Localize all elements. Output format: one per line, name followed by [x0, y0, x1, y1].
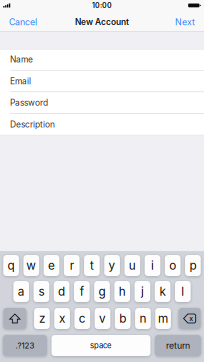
- staticText: Name: [10, 54, 33, 65]
- staticText: f: [80, 284, 84, 299]
- button[interactable]: Delete: [179, 308, 201, 329]
- staticText: l: [181, 284, 184, 299]
- button[interactable]: s: [33, 281, 49, 302]
- staticText: Cancel: [9, 17, 37, 27]
- button[interactable]: j: [135, 281, 150, 302]
- button[interactable]: o: [165, 255, 180, 276]
- button[interactable]: y: [104, 255, 120, 276]
- staticText: Next: [175, 17, 195, 27]
- button[interactable]: t: [84, 255, 100, 276]
- button[interactable]: Cancel: [0, 13, 44, 31]
- button[interactable]: b: [115, 308, 130, 329]
- staticText: o: [169, 258, 176, 273]
- button[interactable]: r: [64, 255, 79, 276]
- button[interactable]: Name: [0, 49, 204, 71]
- staticText: d: [58, 284, 65, 299]
- staticText: i: [151, 258, 154, 273]
- button[interactable]: h: [114, 281, 130, 302]
- button[interactable]: a: [13, 281, 29, 302]
- button[interactable]: Password: [0, 92, 204, 114]
- staticText: space: [90, 341, 112, 350]
- staticText: Email: [10, 76, 31, 86]
- staticText: z: [39, 311, 45, 326]
- button[interactable]: w: [23, 255, 39, 276]
- staticText: w: [26, 258, 36, 273]
- staticText: m: [158, 311, 168, 326]
- button[interactable]: v: [95, 308, 110, 329]
- button[interactable]: space: [51, 335, 150, 356]
- button[interactable]: return: [155, 335, 201, 356]
- staticText: New Account: [75, 17, 129, 27]
- staticText: g: [98, 284, 105, 299]
- button[interactable]: q: [3, 255, 19, 276]
- button[interactable]: Description: [0, 114, 204, 135]
- staticText: x: [59, 311, 65, 326]
- button[interactable]: n: [135, 308, 151, 329]
- staticText: t: [90, 258, 94, 273]
- button[interactable]: e: [44, 255, 59, 276]
- staticText: a: [18, 284, 25, 299]
- staticText: b: [119, 311, 126, 326]
- button[interactable]: c: [74, 308, 90, 329]
- button[interactable]: f: [74, 281, 90, 302]
- staticText: j: [141, 284, 144, 299]
- staticText: k: [160, 284, 166, 299]
- staticText: 10:00: [92, 1, 112, 10]
- button[interactable]: d: [54, 281, 69, 302]
- button[interactable]: l: [175, 281, 191, 302]
- staticText: n: [139, 311, 146, 326]
- staticText: p: [189, 258, 196, 273]
- staticText: y: [109, 258, 116, 273]
- staticText: return: [166, 340, 190, 351]
- staticText: h: [119, 284, 126, 299]
- staticText: .?123: [15, 341, 34, 350]
- button[interactable]: z: [34, 308, 50, 329]
- button[interactable]: k: [155, 281, 170, 302]
- staticText: r: [70, 258, 74, 273]
- button[interactable]: p: [185, 255, 201, 276]
- staticText: c: [79, 311, 86, 326]
- staticText: s: [38, 284, 44, 299]
- staticText: u: [129, 258, 136, 273]
- staticText: q: [8, 258, 15, 273]
- staticText: x: [189, 314, 193, 323]
- staticText: Description: [10, 119, 55, 130]
- button[interactable]: m: [155, 308, 171, 329]
- staticText: Password: [10, 98, 48, 108]
- button[interactable]: .?123: [3, 335, 47, 356]
- button[interactable]: g: [94, 281, 110, 302]
- button[interactable]: Email: [0, 71, 204, 92]
- staticText: e: [48, 258, 55, 273]
- button[interactable]: Next: [168, 13, 204, 31]
- staticText: v: [99, 311, 106, 326]
- button[interactable]: x: [54, 308, 70, 329]
- button[interactable]: Shift: [3, 308, 26, 329]
- button[interactable]: u: [124, 255, 140, 276]
- button[interactable]: i: [145, 255, 160, 276]
